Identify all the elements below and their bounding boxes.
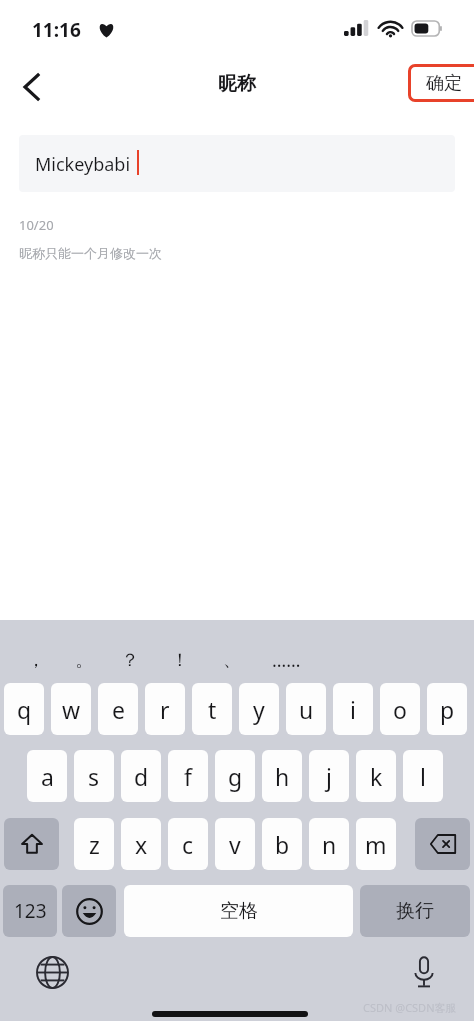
button[interactable]: w xyxy=(51,683,91,735)
staticText: 换行 xyxy=(396,899,434,923)
button[interactable]: q xyxy=(4,683,44,735)
staticText: l xyxy=(420,761,426,792)
staticText: t xyxy=(208,694,217,725)
staticText: i xyxy=(350,694,356,725)
staticText: 123 xyxy=(14,898,47,924)
button[interactable]: 空格 xyxy=(124,885,353,937)
button[interactable]: j xyxy=(309,750,349,802)
button[interactable]: …… xyxy=(264,642,308,678)
staticText: 10/20 xyxy=(19,216,54,234)
staticText: n xyxy=(322,829,337,860)
staticText: r xyxy=(160,694,170,725)
button[interactable]: z xyxy=(74,818,114,870)
button[interactable]: Backspace xyxy=(415,818,470,870)
button[interactable]: s xyxy=(74,750,114,802)
button[interactable]: c xyxy=(168,818,208,870)
button[interactable]: 确定 xyxy=(408,64,474,102)
staticText: ， xyxy=(27,649,45,672)
staticText: u xyxy=(299,694,314,725)
staticText: p xyxy=(440,694,455,725)
staticText: j xyxy=(326,761,332,792)
staticText: d xyxy=(134,761,149,792)
staticText: 确定 xyxy=(426,72,462,95)
button[interactable]: k xyxy=(356,750,396,802)
button[interactable]: Shift xyxy=(4,818,59,870)
button[interactable]: d xyxy=(121,750,161,802)
staticText: k xyxy=(370,761,383,792)
staticText: h xyxy=(275,761,290,792)
button[interactable]: x xyxy=(121,818,161,870)
staticText: s xyxy=(88,761,100,792)
button[interactable]: e xyxy=(98,683,138,735)
staticText: b xyxy=(275,829,290,860)
staticText: 昵称只能一个月修改一次 xyxy=(19,245,162,261)
button[interactable]: a xyxy=(27,750,67,802)
staticText: CSDN @CSDN客服 xyxy=(363,1000,457,1015)
staticText: m xyxy=(365,829,387,860)
staticText: z xyxy=(89,829,100,860)
button[interactable]: Emoji xyxy=(62,885,116,937)
button[interactable]: Mickeybabi xyxy=(19,135,455,192)
button[interactable]: 、 xyxy=(210,642,254,678)
button[interactable]: ， xyxy=(14,642,58,678)
staticText: ！ xyxy=(171,649,189,672)
button[interactable]: t xyxy=(192,683,232,735)
button[interactable]: l xyxy=(403,750,443,802)
button[interactable]: m xyxy=(356,818,396,870)
staticText: a xyxy=(41,761,54,792)
button[interactable]: Change keyboard xyxy=(28,948,76,996)
staticText: w xyxy=(62,694,81,725)
button[interactable]: Voice input xyxy=(400,948,448,996)
staticText: 昵称 xyxy=(0,72,474,96)
button[interactable]: u xyxy=(286,683,326,735)
button[interactable]: n xyxy=(309,818,349,870)
button[interactable]: ？ xyxy=(108,642,152,678)
staticText: 。 xyxy=(75,649,93,672)
staticText: ？ xyxy=(121,649,139,672)
staticText: q xyxy=(17,694,32,725)
button[interactable]: 123 xyxy=(3,885,57,937)
button[interactable]: b xyxy=(262,818,302,870)
button[interactable]: y xyxy=(239,683,279,735)
staticText: Mickeybabi xyxy=(35,152,131,177)
staticText: y xyxy=(253,694,265,725)
button[interactable]: g xyxy=(215,750,255,802)
button[interactable]: i xyxy=(333,683,373,735)
button[interactable]: f xyxy=(168,750,208,802)
staticText: o xyxy=(393,694,407,725)
button[interactable]: ！ xyxy=(158,642,202,678)
staticText: f xyxy=(184,761,192,792)
staticText: x xyxy=(135,829,148,860)
staticText: 11:16 xyxy=(32,17,81,43)
button[interactable]: 换行 xyxy=(360,885,470,937)
staticText: e xyxy=(112,694,125,725)
staticText: g xyxy=(228,761,243,792)
button[interactable]: p xyxy=(427,683,467,735)
staticText: 空格 xyxy=(220,899,258,923)
button[interactable]: h xyxy=(262,750,302,802)
button[interactable]: Back xyxy=(8,64,54,110)
staticText: v xyxy=(229,829,241,860)
button[interactable]: v xyxy=(215,818,255,870)
staticText: …… xyxy=(272,648,301,673)
staticText: 、 xyxy=(223,649,241,672)
staticText: c xyxy=(182,829,194,860)
button[interactable]: 。 xyxy=(62,642,106,678)
button[interactable]: r xyxy=(145,683,185,735)
button[interactable]: o xyxy=(380,683,420,735)
